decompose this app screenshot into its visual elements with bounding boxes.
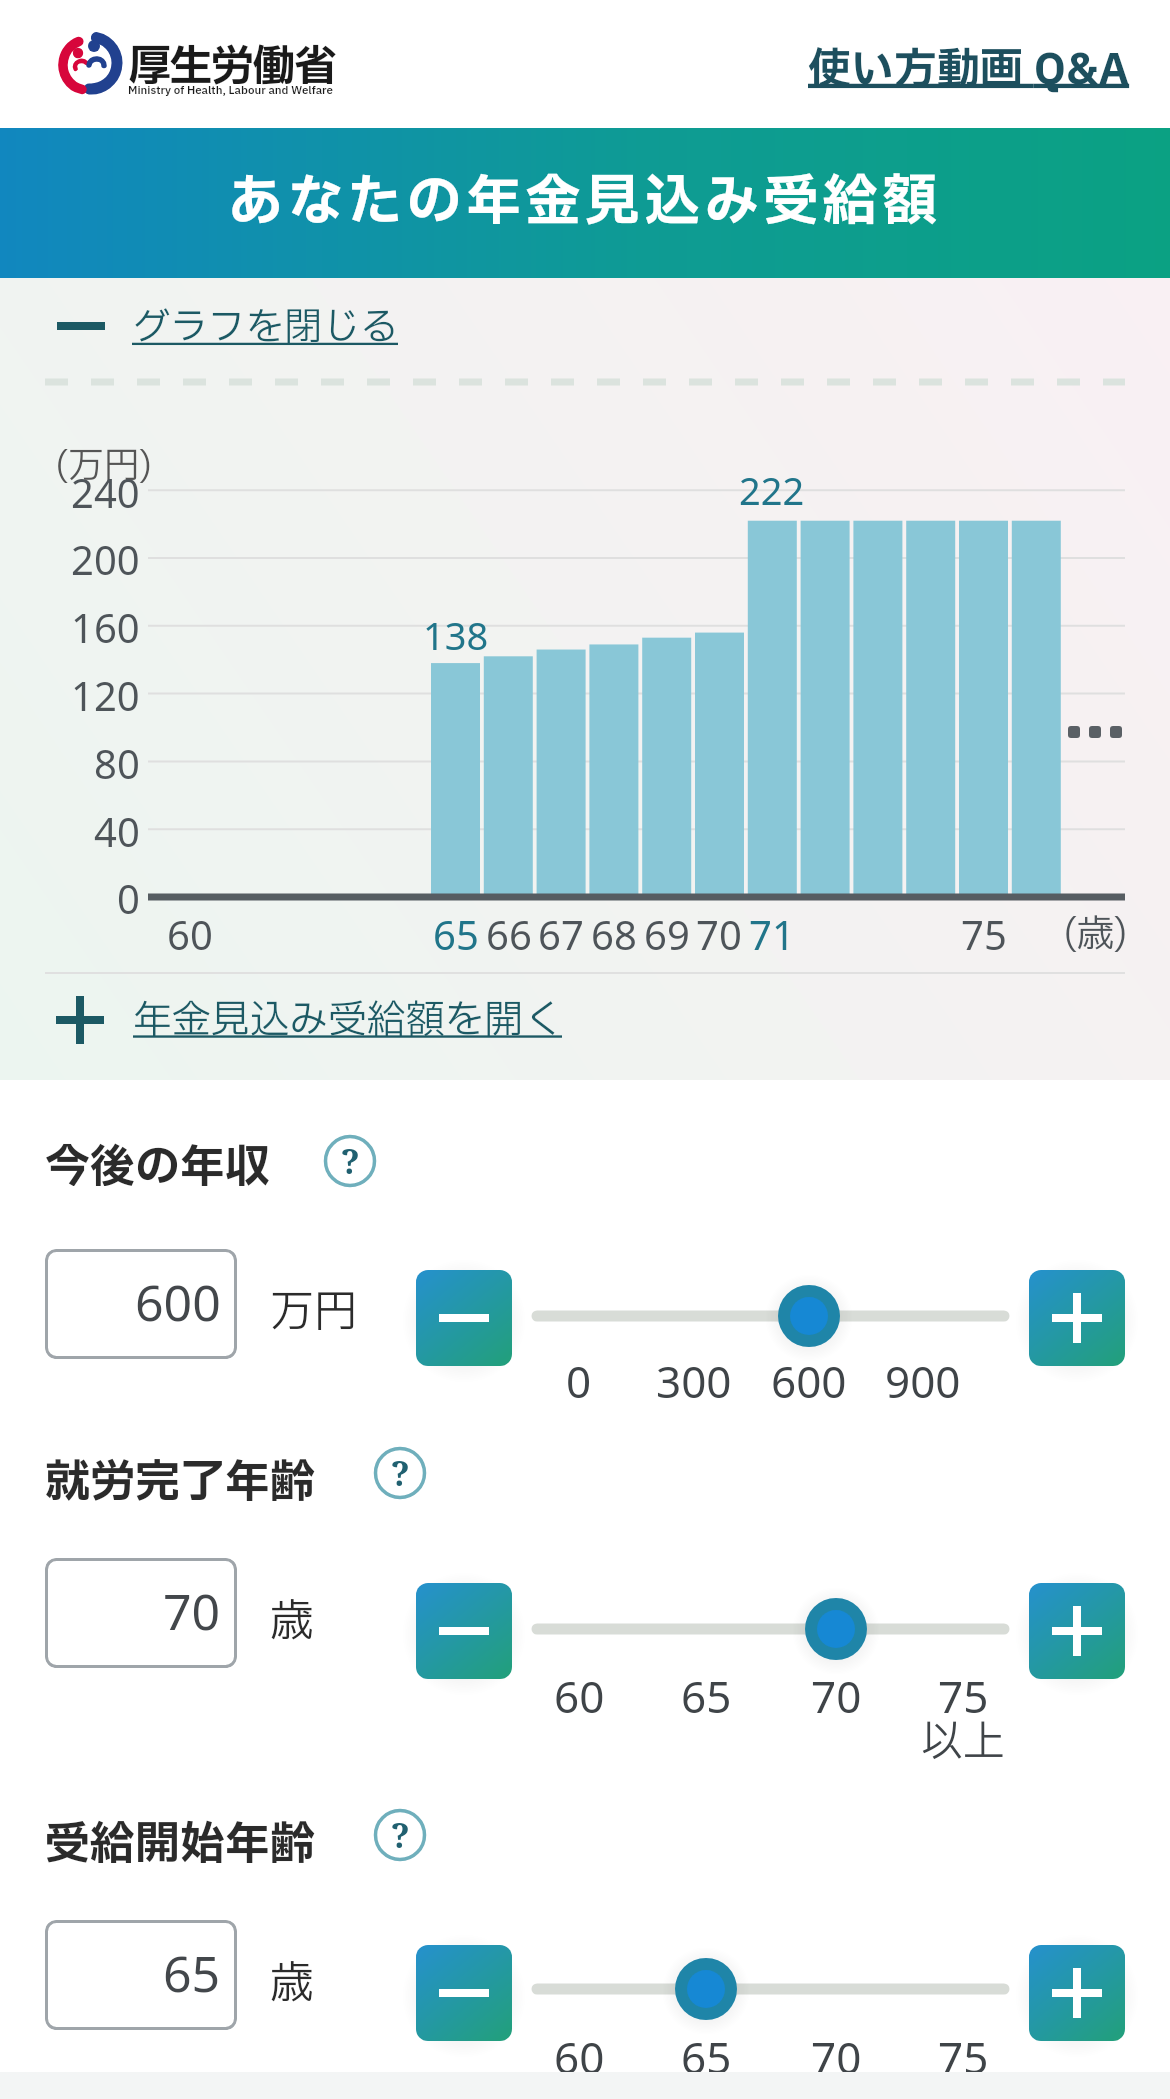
- staticText: ?: [341, 1138, 360, 1184]
- button[interactable]: [416, 1270, 512, 1366]
- staticText: 138: [423, 609, 489, 661]
- staticText: 71: [749, 907, 795, 959]
- staticText: 200: [71, 532, 140, 584]
- staticText: 75: [938, 1666, 989, 1718]
- staticText: 万円: [270, 1280, 358, 1332]
- button[interactable]: [1029, 1270, 1125, 1366]
- staticText: 受給開始年齢: [45, 1811, 316, 1863]
- staticText: 67: [538, 907, 584, 959]
- staticText: 歳: [270, 1951, 314, 2003]
- staticText: 65: [681, 2027, 732, 2079]
- staticText: 300: [656, 1351, 732, 1403]
- staticText: 120: [71, 668, 140, 720]
- staticText: 年金見込み受給額を開く: [133, 992, 563, 1048]
- button[interactable]: [45, 990, 585, 1052]
- staticText: (歳): [1063, 907, 1128, 959]
- staticText: 歳: [270, 1589, 314, 1641]
- staticText: 68: [591, 907, 637, 959]
- staticText: 75: [938, 2027, 989, 2079]
- staticText: 66: [486, 907, 532, 959]
- staticText: ?: [391, 1812, 410, 1858]
- staticText: 就労完了年齢: [45, 1449, 316, 1501]
- staticText: ?: [391, 1450, 410, 1496]
- staticText: 60: [554, 2027, 605, 2079]
- staticText: 使い方動画 Q&A: [808, 38, 1130, 94]
- button[interactable]: 70: [45, 1558, 237, 1668]
- staticText: 222: [739, 464, 805, 516]
- staticText: あなたの年金見込み受給額: [228, 162, 943, 244]
- button[interactable]: ?: [374, 1447, 426, 1499]
- staticText: 600: [135, 1268, 221, 1336]
- staticText: 160: [71, 600, 140, 652]
- staticText: 厚生労働省: [128, 35, 336, 87]
- staticText: 0: [117, 871, 140, 923]
- staticText: (万円): [55, 440, 153, 484]
- staticText: 65: [163, 1939, 221, 2007]
- button[interactable]: [0, 1276, 1170, 1356]
- staticText: 60: [554, 1666, 605, 1718]
- button[interactable]: [0, 1949, 1170, 2029]
- button[interactable]: ?: [374, 1809, 426, 1861]
- button[interactable]: [1029, 1945, 1125, 2041]
- staticText: 0: [566, 1351, 592, 1403]
- button[interactable]: 65: [45, 1920, 237, 2030]
- button[interactable]: [416, 1945, 512, 2041]
- staticText: Ministry of Health, Labour and Welfare: [128, 82, 333, 99]
- staticText: 70: [811, 2027, 862, 2079]
- button[interactable]: [1029, 1583, 1125, 1679]
- staticText: 80: [94, 736, 140, 788]
- staticText: 40: [94, 804, 140, 856]
- button[interactable]: 600: [45, 1249, 237, 1359]
- staticText: 69: [644, 907, 690, 959]
- staticText: グラフを閉じる: [132, 300, 399, 356]
- button[interactable]: 使い方動画 Q&A: [770, 38, 1130, 94]
- staticText: 75: [961, 907, 1007, 959]
- staticText: 900: [885, 1351, 961, 1403]
- button[interactable]: [0, 1589, 1170, 1669]
- staticText: 65: [433, 907, 479, 959]
- staticText: 今後の年収: [45, 1134, 271, 1186]
- staticText: 以上: [921, 1711, 1006, 1763]
- button[interactable]: ?: [324, 1135, 376, 1187]
- staticText: 70: [163, 1577, 221, 1645]
- staticText: 70: [696, 907, 742, 959]
- staticText: 600: [771, 1351, 847, 1403]
- staticText: 70: [811, 1666, 862, 1718]
- staticText: 65: [681, 1666, 732, 1718]
- button[interactable]: [416, 1583, 512, 1679]
- button[interactable]: [45, 296, 425, 356]
- staticText: 60: [167, 907, 213, 959]
- staticText: 240: [71, 465, 140, 517]
